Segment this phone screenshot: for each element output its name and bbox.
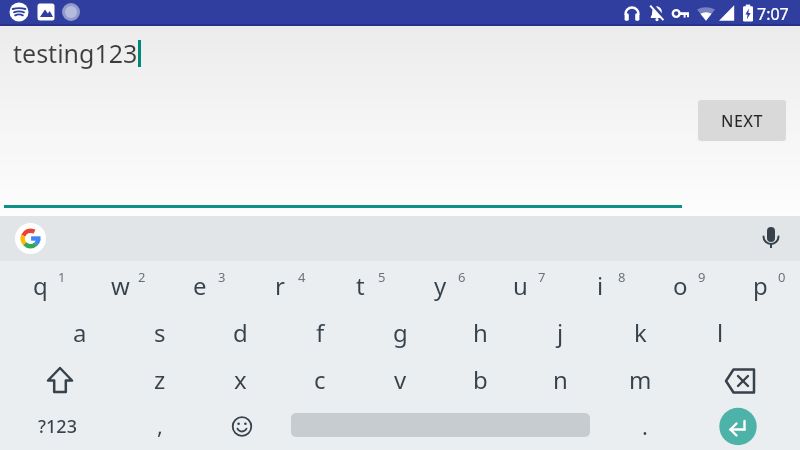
- button[interactable]: [0, 355, 120, 402]
- button[interactable]: s: [120, 308, 200, 355]
- button[interactable]: y: [400, 261, 480, 308]
- staticText: q: [33, 269, 48, 302]
- button[interactable]: NEXT: [698, 100, 786, 141]
- staticText: d: [233, 316, 248, 349]
- staticText: f: [316, 316, 325, 349]
- button[interactable]: [690, 402, 800, 450]
- staticText: 7:07: [757, 3, 789, 25]
- button[interactable]: testing123: [13, 36, 141, 70]
- button[interactable]: b: [440, 355, 520, 402]
- button[interactable]: k: [600, 308, 680, 355]
- staticText: r: [275, 269, 285, 302]
- staticText: v: [394, 363, 407, 396]
- button[interactable]: u: [480, 261, 560, 308]
- staticText: 1: [58, 268, 66, 286]
- staticText: x: [234, 363, 247, 396]
- button[interactable]: [680, 355, 800, 402]
- staticText: 7: [538, 268, 546, 286]
- button[interactable]: [15, 223, 46, 254]
- staticText: u: [513, 269, 528, 302]
- staticText: 2: [138, 268, 146, 286]
- button[interactable]: j: [520, 308, 600, 355]
- button[interactable]: d: [200, 308, 280, 355]
- button[interactable]: ,: [114, 402, 206, 450]
- staticText: l: [717, 316, 724, 349]
- staticText: ,: [157, 410, 163, 440]
- button[interactable]: o: [640, 261, 720, 308]
- button[interactable]: r: [240, 261, 320, 308]
- staticText: 4: [298, 268, 306, 286]
- staticText: g: [393, 316, 408, 349]
- staticText: j: [557, 316, 564, 349]
- button[interactable]: x: [200, 355, 280, 402]
- staticText: b: [473, 363, 488, 396]
- staticText: n: [553, 363, 568, 396]
- staticText: z: [154, 363, 166, 396]
- button[interactable]: ?123: [0, 402, 114, 450]
- staticText: 9: [698, 268, 706, 286]
- staticText: testing123: [13, 36, 138, 70]
- staticText: m: [629, 363, 652, 396]
- staticText: ?123: [38, 414, 77, 439]
- staticText: 6: [458, 268, 466, 286]
- staticText: 3: [218, 268, 226, 286]
- button[interactable]: f: [280, 308, 360, 355]
- staticText: NEXT: [721, 110, 764, 132]
- button[interactable]: i: [560, 261, 640, 308]
- button[interactable]: [753, 220, 789, 256]
- staticText: h: [473, 316, 488, 349]
- staticText: k: [634, 316, 647, 349]
- staticText: .: [642, 411, 648, 441]
- staticText: 8: [618, 268, 626, 286]
- staticText: w: [111, 269, 130, 302]
- button[interactable]: e: [160, 261, 240, 308]
- staticText: o: [673, 269, 688, 302]
- button[interactable]: n: [520, 355, 600, 402]
- button[interactable]: l: [680, 308, 760, 355]
- staticText: c: [314, 363, 326, 396]
- staticText: s: [154, 316, 166, 349]
- button[interactable]: .: [600, 402, 690, 450]
- button[interactable]: c: [280, 355, 360, 402]
- button[interactable]: g: [360, 308, 440, 355]
- button[interactable]: w: [80, 261, 160, 308]
- staticText: t: [356, 269, 365, 302]
- button[interactable]: m: [600, 355, 680, 402]
- staticText: y: [434, 269, 447, 302]
- button[interactable]: z: [120, 355, 200, 402]
- button[interactable]: [206, 402, 280, 450]
- staticText: i: [597, 269, 604, 302]
- staticText: 5: [378, 268, 386, 286]
- staticText: 0: [778, 268, 786, 286]
- staticText: p: [753, 269, 768, 302]
- staticText: a: [73, 316, 87, 349]
- button[interactable]: q: [0, 261, 80, 308]
- button[interactable]: t: [320, 261, 400, 308]
- staticText: e: [193, 269, 207, 302]
- button[interactable]: h: [440, 308, 520, 355]
- button[interactable]: a: [40, 308, 120, 355]
- button[interactable]: p: [720, 261, 800, 308]
- button[interactable]: v: [360, 355, 440, 402]
